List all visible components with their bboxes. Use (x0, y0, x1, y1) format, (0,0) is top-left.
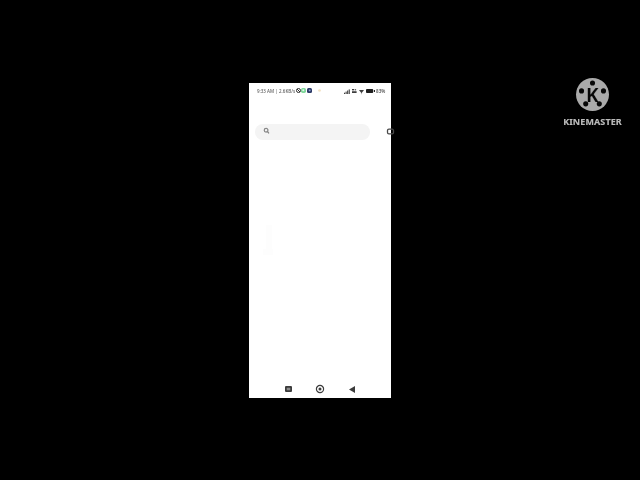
button[interactable]: Back (345, 382, 359, 396)
staticText: KINEMASTER (563, 115, 622, 127)
staticText: 83% (376, 88, 386, 94)
button[interactable]: Recent apps (281, 382, 295, 396)
button[interactable]: More options (387, 128, 393, 135)
staticText: K (586, 82, 599, 108)
button[interactable]: Home (313, 382, 327, 396)
button[interactable]: Search (255, 124, 370, 140)
staticText: 9:33 AM | 2.6KB/s (257, 88, 296, 94)
